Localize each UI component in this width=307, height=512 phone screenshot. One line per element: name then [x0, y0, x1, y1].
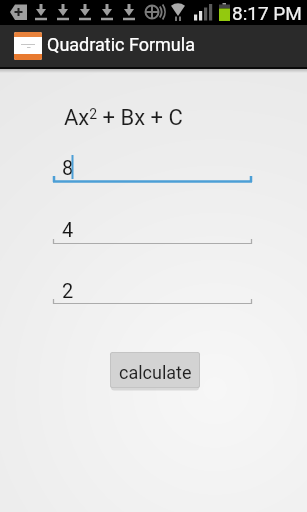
staticText: 4 [62, 218, 74, 241]
button[interactable]: Quadratic Formula [0, 25, 307, 67]
staticText: 2 [62, 279, 74, 302]
staticText: Quadratic Formula [47, 34, 195, 55]
staticText: calculate [119, 362, 192, 383]
button[interactable]: 4 [53, 212, 252, 248]
button[interactable]: 8 [53, 150, 252, 186]
button[interactable]: calculate [110, 352, 200, 390]
button[interactable]: 2 [53, 273, 252, 308]
staticText: 8 [62, 156, 74, 179]
staticText: Ax2 + Bx + C [64, 105, 183, 131]
staticText: 8:17 PM [232, 2, 302, 24]
